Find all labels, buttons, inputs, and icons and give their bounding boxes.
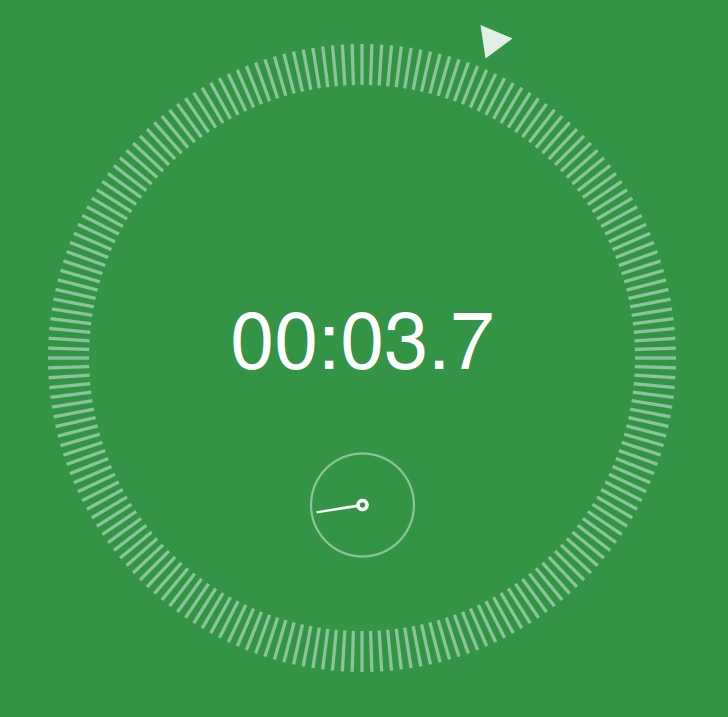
button[interactable]: Stopwatch, 00:03.7, start or stop: [0, 0, 728, 717]
staticText: 00:03.7: [230, 277, 494, 392]
